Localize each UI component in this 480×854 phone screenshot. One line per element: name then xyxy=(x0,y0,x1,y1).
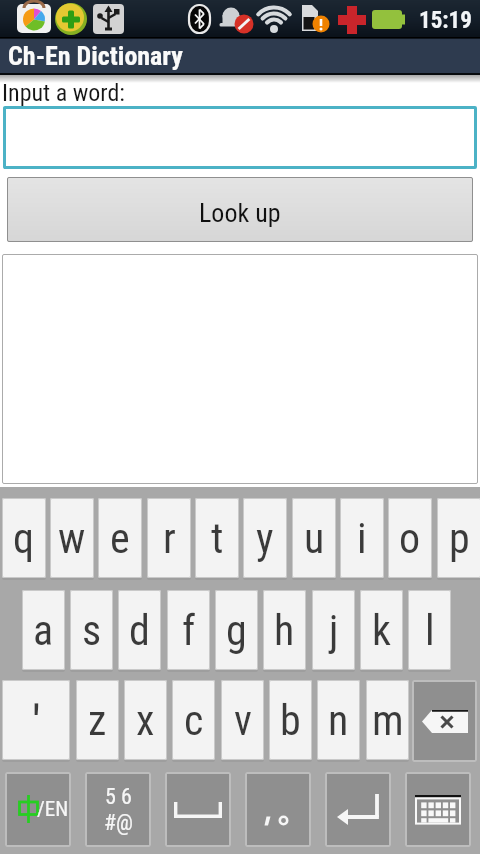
staticText: j xyxy=(329,606,339,655)
button[interactable]: i xyxy=(340,498,384,578)
button[interactable]: c xyxy=(172,680,215,760)
button[interactable]: m xyxy=(366,680,409,760)
staticText: l xyxy=(425,606,435,655)
staticText: q xyxy=(13,514,35,563)
button[interactable]: r xyxy=(147,498,191,578)
button[interactable]: ' xyxy=(2,680,70,760)
staticText: i xyxy=(357,514,367,563)
button[interactable]: x xyxy=(124,680,167,760)
staticText: n xyxy=(328,696,349,745)
button[interactable]: e xyxy=(98,498,142,578)
staticText: g xyxy=(226,606,247,655)
button[interactable]: y xyxy=(243,498,287,578)
staticText: v xyxy=(234,696,252,745)
button[interactable]: h xyxy=(263,590,306,670)
button[interactable] xyxy=(3,106,477,169)
button[interactable]: 5 6 xyxy=(85,772,151,847)
button[interactable]: k xyxy=(360,590,403,670)
staticText: o xyxy=(399,514,421,563)
staticText: s xyxy=(82,606,102,655)
button[interactable] xyxy=(412,680,477,762)
staticText: z xyxy=(88,696,107,745)
staticText: e xyxy=(110,514,130,563)
button[interactable]: v xyxy=(221,680,264,760)
staticText: f xyxy=(182,606,196,655)
button[interactable]: p xyxy=(437,498,480,578)
staticText: b xyxy=(280,696,301,745)
staticText: a xyxy=(33,606,54,655)
button[interactable]: n xyxy=(317,680,360,760)
staticText: d xyxy=(129,606,150,655)
button[interactable]: z xyxy=(76,680,119,760)
staticText: ' xyxy=(32,695,41,754)
staticText: r xyxy=(163,514,176,563)
staticText: y xyxy=(256,514,274,563)
button[interactable]: t xyxy=(195,498,239,578)
staticText: 5 6 xyxy=(105,784,132,810)
staticText: k xyxy=(372,606,391,655)
button[interactable] xyxy=(405,772,471,847)
button[interactable]: s xyxy=(70,590,113,670)
staticText: w xyxy=(58,514,86,563)
staticText: h xyxy=(274,606,295,655)
staticText: p xyxy=(449,514,470,563)
button[interactable]: q xyxy=(2,498,46,578)
button[interactable]: Look up xyxy=(7,177,473,242)
button[interactable] xyxy=(245,772,311,847)
button[interactable]: j xyxy=(312,590,355,670)
staticText: m xyxy=(372,696,404,745)
button[interactable]: o xyxy=(388,498,432,578)
button[interactable]: w xyxy=(50,498,94,578)
button[interactable]: f xyxy=(167,590,210,670)
button[interactable]: g xyxy=(215,590,258,670)
button[interactable]: /EN xyxy=(5,772,71,847)
staticText: Ch-En Dictionary xyxy=(8,41,183,71)
button[interactable] xyxy=(165,772,231,847)
staticText: c xyxy=(184,696,204,745)
staticText: #@ xyxy=(104,810,133,836)
button[interactable]: u xyxy=(292,498,336,578)
staticText: u xyxy=(304,514,325,563)
staticText: 15:19 xyxy=(419,7,472,34)
button[interactable]: b xyxy=(269,680,312,760)
button[interactable]: a xyxy=(22,590,65,670)
staticText: Look up xyxy=(199,198,281,228)
button[interactable] xyxy=(325,772,391,847)
staticText: /EN xyxy=(37,797,69,822)
staticText: t xyxy=(211,514,224,563)
staticText: x xyxy=(136,696,155,745)
staticText: Input a word: xyxy=(2,79,125,107)
button[interactable]: l xyxy=(408,590,451,670)
button[interactable]: d xyxy=(118,590,161,670)
